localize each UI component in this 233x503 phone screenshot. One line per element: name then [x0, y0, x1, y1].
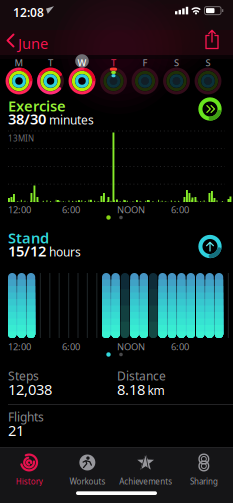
staticText: Flights: [8, 409, 44, 425]
staticText: 15/12: [8, 241, 46, 260]
staticText: 13MIN: [8, 133, 34, 144]
button[interactable]: June: [2, 30, 50, 56]
button[interactable]: Sharing: [175, 447, 233, 491]
staticText: 12,038: [8, 379, 52, 399]
staticText: S: [205, 56, 210, 69]
staticText: NOON: [117, 203, 145, 216]
staticText: Workouts: [69, 476, 105, 487]
staticText: minutes: [49, 112, 94, 128]
button[interactable]: T: [98, 54, 129, 98]
staticText: 38/30: [8, 109, 46, 128]
staticText: Exercise: [8, 96, 66, 115]
staticText: Stand: [8, 228, 49, 247]
staticText: 6:00: [62, 340, 80, 353]
button[interactable]: Workouts: [58, 447, 116, 491]
button[interactable]: S: [161, 54, 192, 98]
staticText: km: [147, 382, 164, 398]
staticText: Distance: [117, 368, 166, 384]
button[interactable]: [193, 92, 227, 126]
button[interactable]: [201, 28, 223, 52]
button[interactable]: Achievements: [116, 447, 175, 491]
staticText: T: [48, 56, 53, 69]
button[interactable]: F: [129, 54, 161, 98]
staticText: NOON: [117, 340, 145, 353]
button[interactable]: W: [66, 54, 98, 98]
staticText: hours: [49, 244, 81, 260]
staticText: 6:00: [171, 203, 189, 216]
staticText: 12:00: [8, 203, 31, 216]
staticText: M: [14, 56, 23, 69]
staticText: Steps: [8, 368, 39, 384]
staticText: F: [142, 56, 147, 69]
button[interactable]: S: [192, 54, 224, 98]
staticText: S: [174, 56, 179, 69]
staticText: 6:00: [62, 203, 80, 216]
button[interactable]: T: [35, 54, 66, 98]
button[interactable]: M: [3, 54, 35, 98]
staticText: T: [111, 56, 116, 69]
staticText: 8.18: [117, 379, 145, 399]
staticText: History: [16, 476, 43, 487]
staticText: 6:00: [171, 340, 189, 353]
staticText: 12:08: [13, 4, 44, 20]
staticText: Achievements: [119, 476, 172, 487]
staticText: June: [18, 33, 48, 53]
button[interactable]: History: [0, 447, 58, 491]
staticText: Sharing: [190, 476, 218, 487]
staticText: 21: [8, 420, 24, 440]
button[interactable]: [193, 229, 227, 263]
staticText: W: [77, 56, 86, 69]
staticText: 12:00: [8, 340, 31, 353]
